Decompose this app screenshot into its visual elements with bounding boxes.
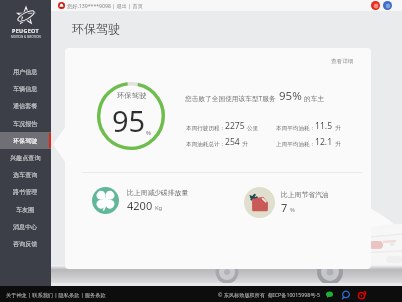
staticText: 您击败了全国使用该车型T服务 — [185, 94, 276, 103]
staticText: Kg — [155, 204, 163, 212]
staticText: 本周行驶历程 — [186, 125, 220, 132]
staticText: : — [220, 124, 225, 132]
staticText: 上周平均油耗 — [276, 141, 310, 148]
button[interactable]: 选车查询 — [0, 166, 51, 183]
staticText: 路书管理 — [13, 188, 38, 196]
staticText: 7 — [281, 200, 288, 215]
staticText: 通信套餐 — [13, 102, 38, 110]
button[interactable]: 消息中心 — [0, 218, 51, 235]
staticText: 本周平均油耗 — [276, 125, 310, 132]
staticText: 选车查询 — [13, 171, 38, 179]
staticText: 12.1 — [315, 136, 333, 148]
button[interactable]: Share — [383, 1, 392, 10]
button[interactable]: 车友圈 — [0, 201, 51, 218]
staticText: 升 — [242, 141, 248, 148]
button[interactable]: 环保驾驶 — [0, 132, 51, 149]
staticText: 254 — [225, 136, 240, 148]
staticText: 您好,139****9098 | 退出 | 首页 — [67, 2, 143, 9]
button[interactable]: 车辆信息 — [0, 80, 51, 97]
staticText: 的车主 — [304, 95, 325, 103]
staticText: 95 — [112, 101, 146, 140]
staticText: 11.5 — [315, 120, 333, 132]
staticText: 升 — [335, 141, 341, 148]
staticText: 兴趣点查询 — [10, 154, 41, 162]
button[interactable]: 兴趣点查询 — [0, 149, 51, 166]
staticText: 升 — [335, 125, 341, 132]
button[interactable]: 路书管理 — [0, 183, 51, 200]
button[interactable]: Weibo — [357, 290, 366, 299]
staticText: 95% — [279, 88, 302, 104]
staticText: 2275 — [225, 120, 245, 132]
staticText: : — [220, 140, 225, 148]
staticText: 4200 — [127, 198, 153, 213]
staticText: 环保驾驶 — [72, 21, 120, 36]
staticText: 查看详细 — [331, 58, 354, 65]
staticText: MOTION & EMOTION — [11, 35, 41, 39]
staticText: : — [310, 140, 315, 148]
staticText: 关于神龙 | 联系我们 | 隐私条款 | 服务条款 — [6, 291, 106, 298]
staticText: 环保驾驶 — [13, 137, 38, 145]
staticText: : — [310, 124, 315, 132]
staticText: 比上周减少碳排放量 — [127, 188, 189, 197]
staticText: © 东风标致版权所有 都ICP备10015998号-5 — [218, 291, 320, 298]
staticText: 车况报告 — [13, 120, 38, 128]
button[interactable]: 车况报告 — [0, 115, 51, 132]
staticText: 车友圈 — [16, 206, 35, 214]
button[interactable]: 通信套餐 — [0, 97, 51, 114]
staticText: % — [146, 129, 151, 137]
staticText: 用户信息 — [13, 68, 38, 76]
button[interactable]: 咨询反馈 — [0, 235, 51, 252]
staticText: 消息中心 — [13, 223, 38, 231]
staticText: 咨询反馈 — [13, 240, 38, 248]
staticText: 车辆信息 — [13, 85, 38, 93]
staticText: % — [290, 206, 295, 214]
staticText: 公里 — [247, 125, 259, 132]
staticText: PEUGEOT — [12, 27, 39, 34]
button[interactable]: 用户信息 — [0, 63, 51, 80]
staticText: 比上周节省汽油 — [281, 190, 329, 199]
button[interactable]: WeChat — [325, 290, 334, 299]
button[interactable]: Search — [341, 290, 350, 299]
staticText: 环保驾驶 — [117, 91, 147, 100]
staticText: 本周油耗总计 — [186, 141, 220, 148]
button[interactable]: Weibo — [371, 1, 380, 10]
button[interactable]: 查看详细 — [331, 58, 354, 65]
